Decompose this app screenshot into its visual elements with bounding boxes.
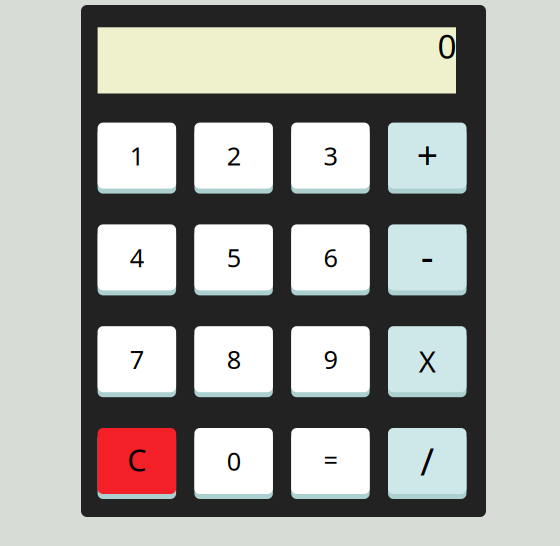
staticText: 5 (227, 241, 241, 274)
button[interactable]: C (98, 428, 176, 499)
staticText: 0 (437, 24, 456, 68)
staticText: / (420, 436, 434, 486)
staticText: = (323, 443, 337, 477)
button[interactable]: - (388, 224, 466, 295)
staticText: X (419, 342, 436, 381)
button[interactable]: 2 (194, 123, 273, 194)
button[interactable]: 0 (194, 428, 273, 499)
button[interactable]: 4 (98, 224, 176, 295)
button[interactable]: X (388, 326, 466, 397)
button[interactable]: 6 (291, 224, 370, 295)
button[interactable]: 8 (194, 326, 273, 397)
button[interactable]: + (388, 123, 466, 194)
button[interactable]: 9 (291, 326, 370, 397)
staticText: 4 (130, 241, 144, 274)
staticText: 2 (227, 139, 241, 172)
staticText: 3 (323, 139, 337, 172)
staticText: 7 (130, 342, 144, 376)
staticText: 8 (227, 342, 241, 376)
staticText: 9 (323, 342, 337, 376)
button[interactable]: = (291, 428, 370, 499)
staticText: + (417, 130, 438, 179)
staticText: - (421, 229, 434, 282)
staticText: 1 (130, 139, 144, 172)
button[interactable]: 1 (98, 123, 176, 194)
staticText: 6 (323, 241, 337, 274)
button[interactable]: 5 (194, 224, 273, 295)
button[interactable]: / (388, 428, 466, 499)
staticText: C (127, 439, 146, 480)
button[interactable]: 7 (98, 326, 176, 397)
staticText: 0 (227, 444, 241, 478)
button[interactable]: 3 (291, 123, 370, 194)
